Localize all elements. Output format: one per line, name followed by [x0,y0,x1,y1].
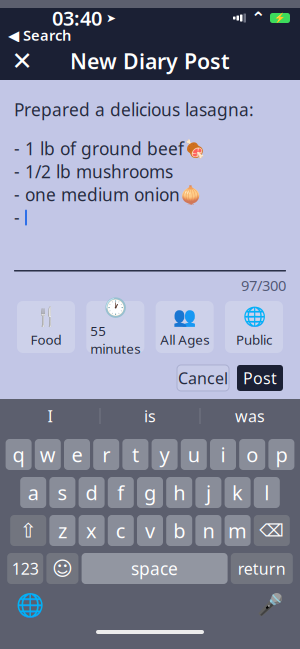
staticText: ☺ [52,557,73,580]
button[interactable]: z [49,515,75,546]
button[interactable]: o [239,439,265,470]
staticText: l [264,479,269,506]
staticText: j [206,479,211,506]
staticText: ⌫ [259,521,284,540]
button[interactable]: h [166,477,192,508]
staticText: h [173,479,185,506]
button[interactable]: Dictate [250,588,290,622]
staticText: a [28,479,39,506]
staticText: y [160,441,170,468]
staticText: t [132,441,139,468]
button[interactable]: Close [0,42,44,80]
staticText: I [47,405,52,427]
staticText: d [86,479,98,506]
staticText: 🌐 [242,305,265,327]
staticText: 97/300 [241,275,286,295]
button[interactable]: t [122,439,148,470]
staticText: 123 [12,558,39,579]
staticText: ⇧ [20,519,37,542]
button[interactable]: e [64,439,90,470]
staticText: - one medium onion🧅 [14,183,202,206]
staticText: n [202,517,214,544]
button[interactable]: m [225,515,251,546]
button[interactable]: l [254,477,280,508]
button[interactable]: w [35,439,61,470]
staticText: Food [30,331,61,348]
staticText: 👥 [173,305,196,327]
staticText: space [131,557,178,580]
staticText: ➤ [102,11,116,25]
button[interactable]: 🕐 [86,301,144,353]
staticText: 🕐 [104,297,127,318]
staticText: is [144,405,156,427]
staticText: r [102,441,110,468]
staticText: f [117,479,124,506]
button[interactable]: k [225,477,251,508]
staticText: New Diary Post [70,47,230,75]
button[interactable]: i [210,439,236,470]
staticText: k [232,479,243,506]
button[interactable]: v [137,515,163,546]
button[interactable]: ⌫ [254,515,290,546]
staticText: w [40,441,56,468]
button[interactable]: was [200,399,299,433]
button[interactable]: return [231,553,293,584]
staticText: Cancel [178,367,228,389]
staticText: z [58,517,67,544]
button[interactable]: s [49,477,75,508]
button[interactable]: I [0,399,99,433]
button[interactable]: is [100,399,199,433]
button[interactable]: Cancel [177,365,229,391]
button[interactable]: 123 [7,553,43,584]
staticText: ✕ [11,47,32,75]
staticText: All Ages [160,331,209,348]
button[interactable]: g [137,477,163,508]
staticText: b [173,517,185,544]
button[interactable]: 🌐 [225,301,283,353]
button[interactable]: Change keyboard [10,588,50,622]
staticText: return [238,558,286,579]
button[interactable]: q [6,439,32,470]
staticText: e [71,441,82,468]
button[interactable]: f [108,477,134,508]
button[interactable]: y [152,439,178,470]
button[interactable]: Post [237,365,283,391]
button[interactable]: b [166,515,192,546]
staticText: v [145,517,155,544]
staticText: Prepared a delicious lasagna: [14,98,254,121]
button[interactable]: r [93,439,119,470]
button[interactable]: ⇧ [10,515,46,546]
staticText: u [188,441,200,468]
button[interactable]: j [195,477,221,508]
button[interactable]: n [195,515,221,546]
button[interactable]: space [82,553,228,584]
staticText: 55 minutes [90,322,140,357]
staticText: ⚡ [274,13,286,23]
staticText: i [220,441,225,468]
staticText: q [13,441,25,468]
staticText: 🍴 [34,305,57,327]
staticText: Public [236,331,272,348]
staticText: ◀ Search [8,25,71,45]
button[interactable]: x [79,515,105,546]
staticText: x [86,517,97,544]
button[interactable]: p [268,439,294,470]
staticText: was [235,405,265,427]
button[interactable]: d [79,477,105,508]
staticText: 03:40 [52,5,102,31]
staticText: 🎤 [256,593,283,617]
button[interactable]: a [20,477,46,508]
button[interactable]: u [181,439,207,470]
staticText: - 1/2 lb mushrooms [14,160,173,183]
staticText: s [57,479,67,506]
button[interactable]: 👥 [156,301,214,353]
button[interactable]: 🍴 [17,301,75,353]
staticText: 🌐 [16,592,44,618]
staticText: m [228,517,247,544]
button[interactable]: c [108,515,134,546]
staticText: - 1 lb of ground beef🍖 [14,137,206,160]
staticText: p [275,441,287,468]
staticText: Post [243,367,277,389]
staticText: c [116,517,126,544]
button[interactable]: ☺ [46,553,78,584]
